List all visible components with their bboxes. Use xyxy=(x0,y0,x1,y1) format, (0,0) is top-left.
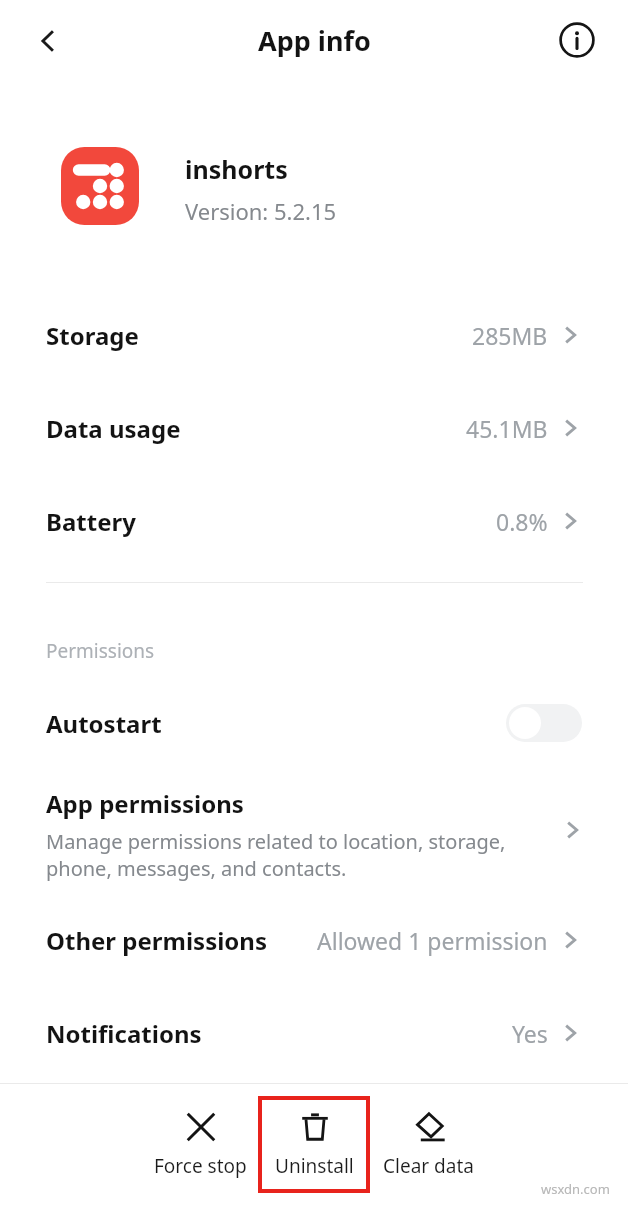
staticText: Allowed 1 permission xyxy=(317,925,548,956)
button[interactable]: Autostart xyxy=(0,688,628,758)
staticText: Version: 5.2.15 xyxy=(185,196,337,226)
staticText: 45.1MB xyxy=(466,413,548,444)
staticText: Storage xyxy=(46,319,139,352)
staticText: inshorts xyxy=(185,152,288,186)
staticText: Data usage xyxy=(46,412,181,445)
button[interactable]: Notifications xyxy=(0,998,628,1068)
button[interactable]: Clear data xyxy=(372,1096,484,1193)
staticText: App info xyxy=(258,22,371,59)
staticText: wsxdn.com xyxy=(541,1180,610,1198)
button[interactable]: Data usage xyxy=(0,393,628,463)
button[interactable]: Force stop xyxy=(144,1096,256,1193)
staticText: 0.8% xyxy=(496,506,548,537)
staticText: 285MB xyxy=(472,320,548,351)
button[interactable]: Uninstall xyxy=(258,1096,370,1193)
staticText: Manage permissions related to location, … xyxy=(46,828,506,882)
button[interactable]: App permissions xyxy=(0,775,628,895)
staticText: Autostart xyxy=(46,707,162,740)
staticText: Notifications xyxy=(46,1017,202,1050)
staticText: Battery xyxy=(46,505,136,538)
button[interactable]: Battery xyxy=(0,486,628,556)
staticText: Uninstall xyxy=(275,1153,354,1179)
staticText: Yes xyxy=(512,1018,548,1049)
button[interactable]: App details xyxy=(551,14,603,66)
button[interactable]: Back xyxy=(22,15,74,67)
staticText: App permissions xyxy=(46,787,244,820)
staticText: Force stop xyxy=(154,1153,247,1179)
staticText: Other permissions xyxy=(46,924,268,957)
button[interactable]: Storage xyxy=(0,300,628,370)
button[interactable]: Other permissions xyxy=(0,905,628,975)
staticText: Clear data xyxy=(383,1153,474,1179)
staticText: Permissions xyxy=(46,638,155,664)
